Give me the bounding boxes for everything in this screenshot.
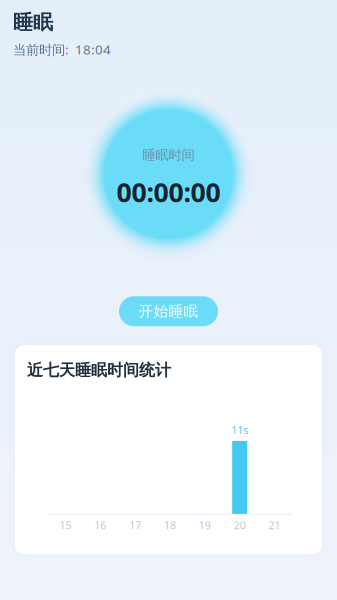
staticText: 21 <box>269 518 281 532</box>
staticText: 近七天睡眠时间统计 <box>27 360 171 380</box>
staticText: 16 <box>94 518 106 532</box>
staticText: 11s <box>231 423 248 437</box>
button[interactable]: 开始睡眠 <box>119 296 218 326</box>
staticText: 开始睡眠 <box>138 302 198 320</box>
staticText: 15 <box>59 518 71 532</box>
staticText: 19 <box>199 518 211 532</box>
staticText: 20 <box>234 518 246 532</box>
staticText: 00:00:00 <box>116 174 220 210</box>
staticText: 当前时间: 18:04 <box>13 41 111 58</box>
staticText: 睡眠时间 <box>142 147 194 163</box>
staticText: 17 <box>129 518 141 532</box>
staticText: 睡眠 <box>13 10 53 35</box>
staticText: 18 <box>164 518 176 532</box>
